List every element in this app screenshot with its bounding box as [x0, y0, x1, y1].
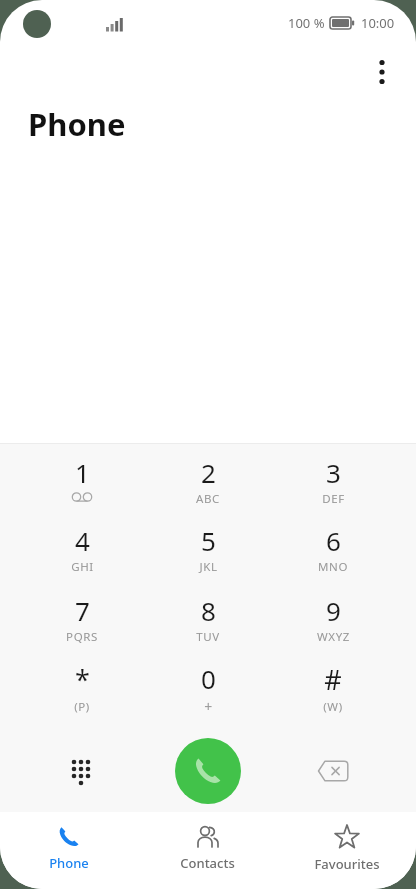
button[interactable]: 0 — [153, 661, 263, 723]
staticText: 8 — [201, 593, 216, 628]
button[interactable]: 1 — [27, 455, 137, 517]
staticText: 100 % — [288, 14, 325, 32]
staticText: 5 — [201, 523, 216, 558]
button[interactable]: 5 — [153, 523, 263, 585]
staticText: + — [204, 697, 213, 716]
button[interactable]: 4 — [27, 523, 137, 585]
staticText: Phone — [49, 854, 89, 872]
button[interactable]: Call — [175, 738, 241, 804]
button[interactable]: 7 — [27, 593, 137, 655]
staticText: (P) — [74, 699, 90, 715]
staticText: WXYZ — [317, 629, 350, 645]
button[interactable]: Keypad — [54, 743, 110, 799]
staticText: DEF — [322, 491, 345, 507]
staticText: 3 — [326, 455, 341, 490]
staticText: # — [324, 661, 342, 698]
staticText: MNO — [318, 559, 348, 575]
staticText: 0 — [201, 661, 216, 696]
staticText: Contacts — [180, 854, 235, 872]
staticText: TUV — [196, 629, 220, 645]
staticText: 7 — [75, 593, 90, 628]
staticText: Phone — [28, 103, 126, 145]
button[interactable]: 6 — [278, 523, 388, 585]
button[interactable]: 8 — [153, 593, 263, 655]
button[interactable]: 9 — [278, 593, 388, 655]
staticText: 2 — [201, 455, 216, 490]
staticText: ABC — [196, 491, 220, 507]
button[interactable]: # — [278, 661, 388, 723]
staticText: * — [75, 661, 90, 698]
staticText: 9 — [326, 593, 341, 628]
button[interactable]: Contacts — [138, 812, 277, 889]
staticText: (W) — [323, 699, 343, 715]
staticText: Favourites — [314, 855, 380, 873]
staticText: 6 — [326, 523, 341, 558]
button[interactable]: 3 — [278, 455, 388, 517]
staticText: 1 — [75, 455, 90, 490]
staticText: JKL — [199, 559, 218, 575]
button[interactable]: More options — [360, 50, 404, 94]
staticText: GHI — [71, 559, 94, 575]
button[interactable]: 2 — [153, 455, 263, 517]
staticText: 4 — [75, 523, 90, 558]
button[interactable]: Favourites — [277, 812, 416, 889]
button[interactable]: * — [27, 661, 137, 723]
staticText: 10:00 — [361, 14, 395, 32]
button[interactable]: Phone — [0, 812, 138, 889]
staticText: PQRS — [66, 629, 98, 645]
button[interactable]: Backspace — [305, 743, 361, 799]
